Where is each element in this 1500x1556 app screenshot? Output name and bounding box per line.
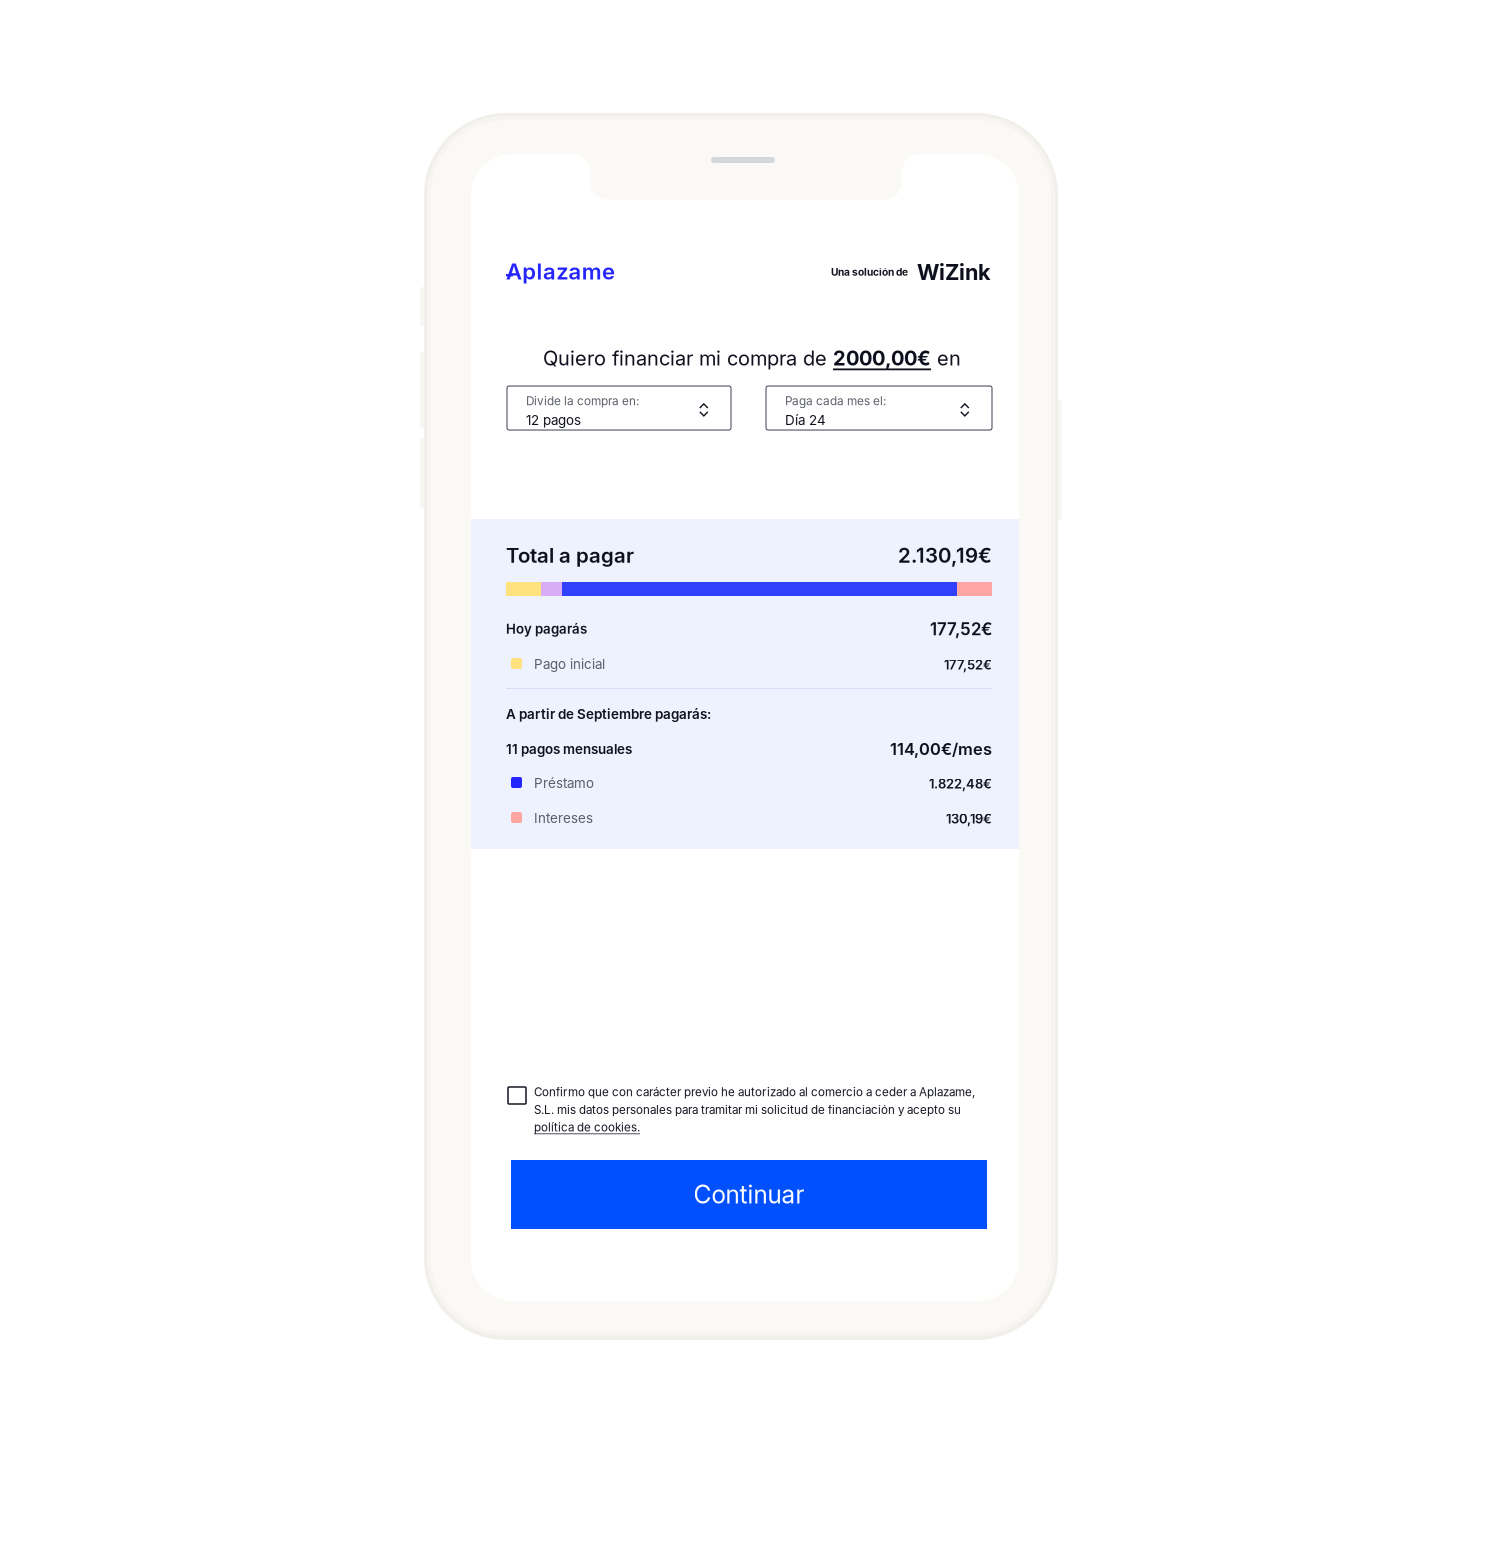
staticText: WiZink <box>917 259 991 285</box>
staticText: 11 pagos mensuales <box>506 741 632 757</box>
staticText: Hoy pagarás <box>506 621 587 637</box>
staticText: 130,19€ <box>946 811 992 827</box>
staticText: en <box>931 346 961 370</box>
staticText: Total a pagar <box>506 543 634 568</box>
button[interactable]: Divide la compra en: <box>507 386 731 430</box>
staticText: Continuar <box>693 1180 804 1209</box>
staticText: política de cookies. <box>534 1120 640 1134</box>
staticText: 1.822,48€ <box>929 776 992 792</box>
staticText: 177,52€ <box>930 619 992 639</box>
button[interactable]: Confirmar autorización <box>508 1087 526 1104</box>
staticText: 2000,00€ <box>833 346 931 370</box>
staticText: Préstamo <box>534 775 594 791</box>
staticText: Paga cada mes el: <box>785 394 886 408</box>
staticText: A partir de Septiembre pagarás: <box>506 706 711 722</box>
staticText: Día 24 <box>785 412 826 428</box>
button[interactable]: Aplazame <box>506 258 636 284</box>
staticText: Pago inicial <box>534 656 605 672</box>
staticText: Una solución de <box>831 266 908 278</box>
staticText: Confirmo que con carácter previo he auto… <box>534 1085 975 1117</box>
staticText: 177,52€ <box>944 657 992 673</box>
staticText: Divide la compra en: <box>526 394 639 408</box>
staticText: Intereses <box>534 810 593 826</box>
button[interactable]: Continuar <box>511 1160 987 1229</box>
button[interactable]: Paga cada mes el: <box>766 386 992 430</box>
staticText: Quiero financiar mi compra de <box>543 346 833 370</box>
staticText: 114,00€/mes <box>890 739 992 759</box>
staticText: Aplazame <box>506 258 615 285</box>
staticText: 12 pagos <box>526 412 581 428</box>
button[interactable]: política de cookies. <box>534 1120 640 1134</box>
staticText: 2.130,19€ <box>898 543 992 568</box>
